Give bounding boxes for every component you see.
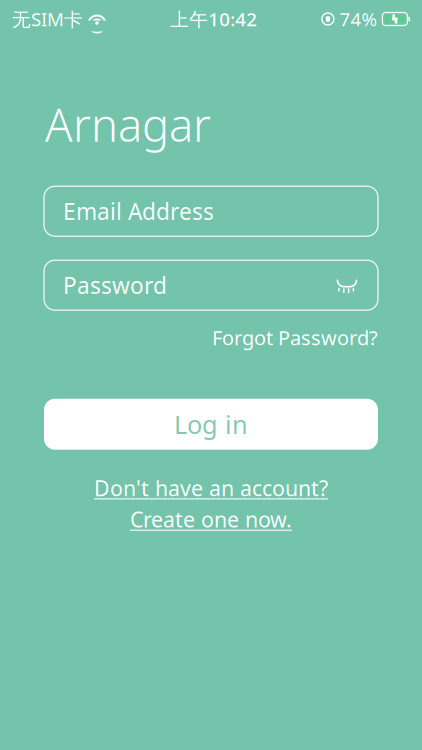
button[interactable]: Log in <box>44 399 378 450</box>
button[interactable]: Password <box>44 260 378 310</box>
staticText: Don't have an account? <box>94 474 328 502</box>
staticText: Arnagar <box>45 94 211 154</box>
staticText: Forgot Password? <box>212 324 378 351</box>
button[interactable]: Forgot Password? <box>212 324 378 351</box>
staticText: 上午10:42 <box>170 7 257 31</box>
button[interactable]: Don't have an account? <box>44 474 378 533</box>
button[interactable]: Email Address <box>44 186 378 236</box>
staticText: Email Address <box>63 196 214 226</box>
staticText: Password <box>63 270 167 300</box>
staticText: 74% <box>339 7 377 31</box>
staticText: Create one now. <box>130 505 292 533</box>
staticText: Log in <box>174 407 248 441</box>
staticText: 无SIM卡 <box>12 7 83 31</box>
